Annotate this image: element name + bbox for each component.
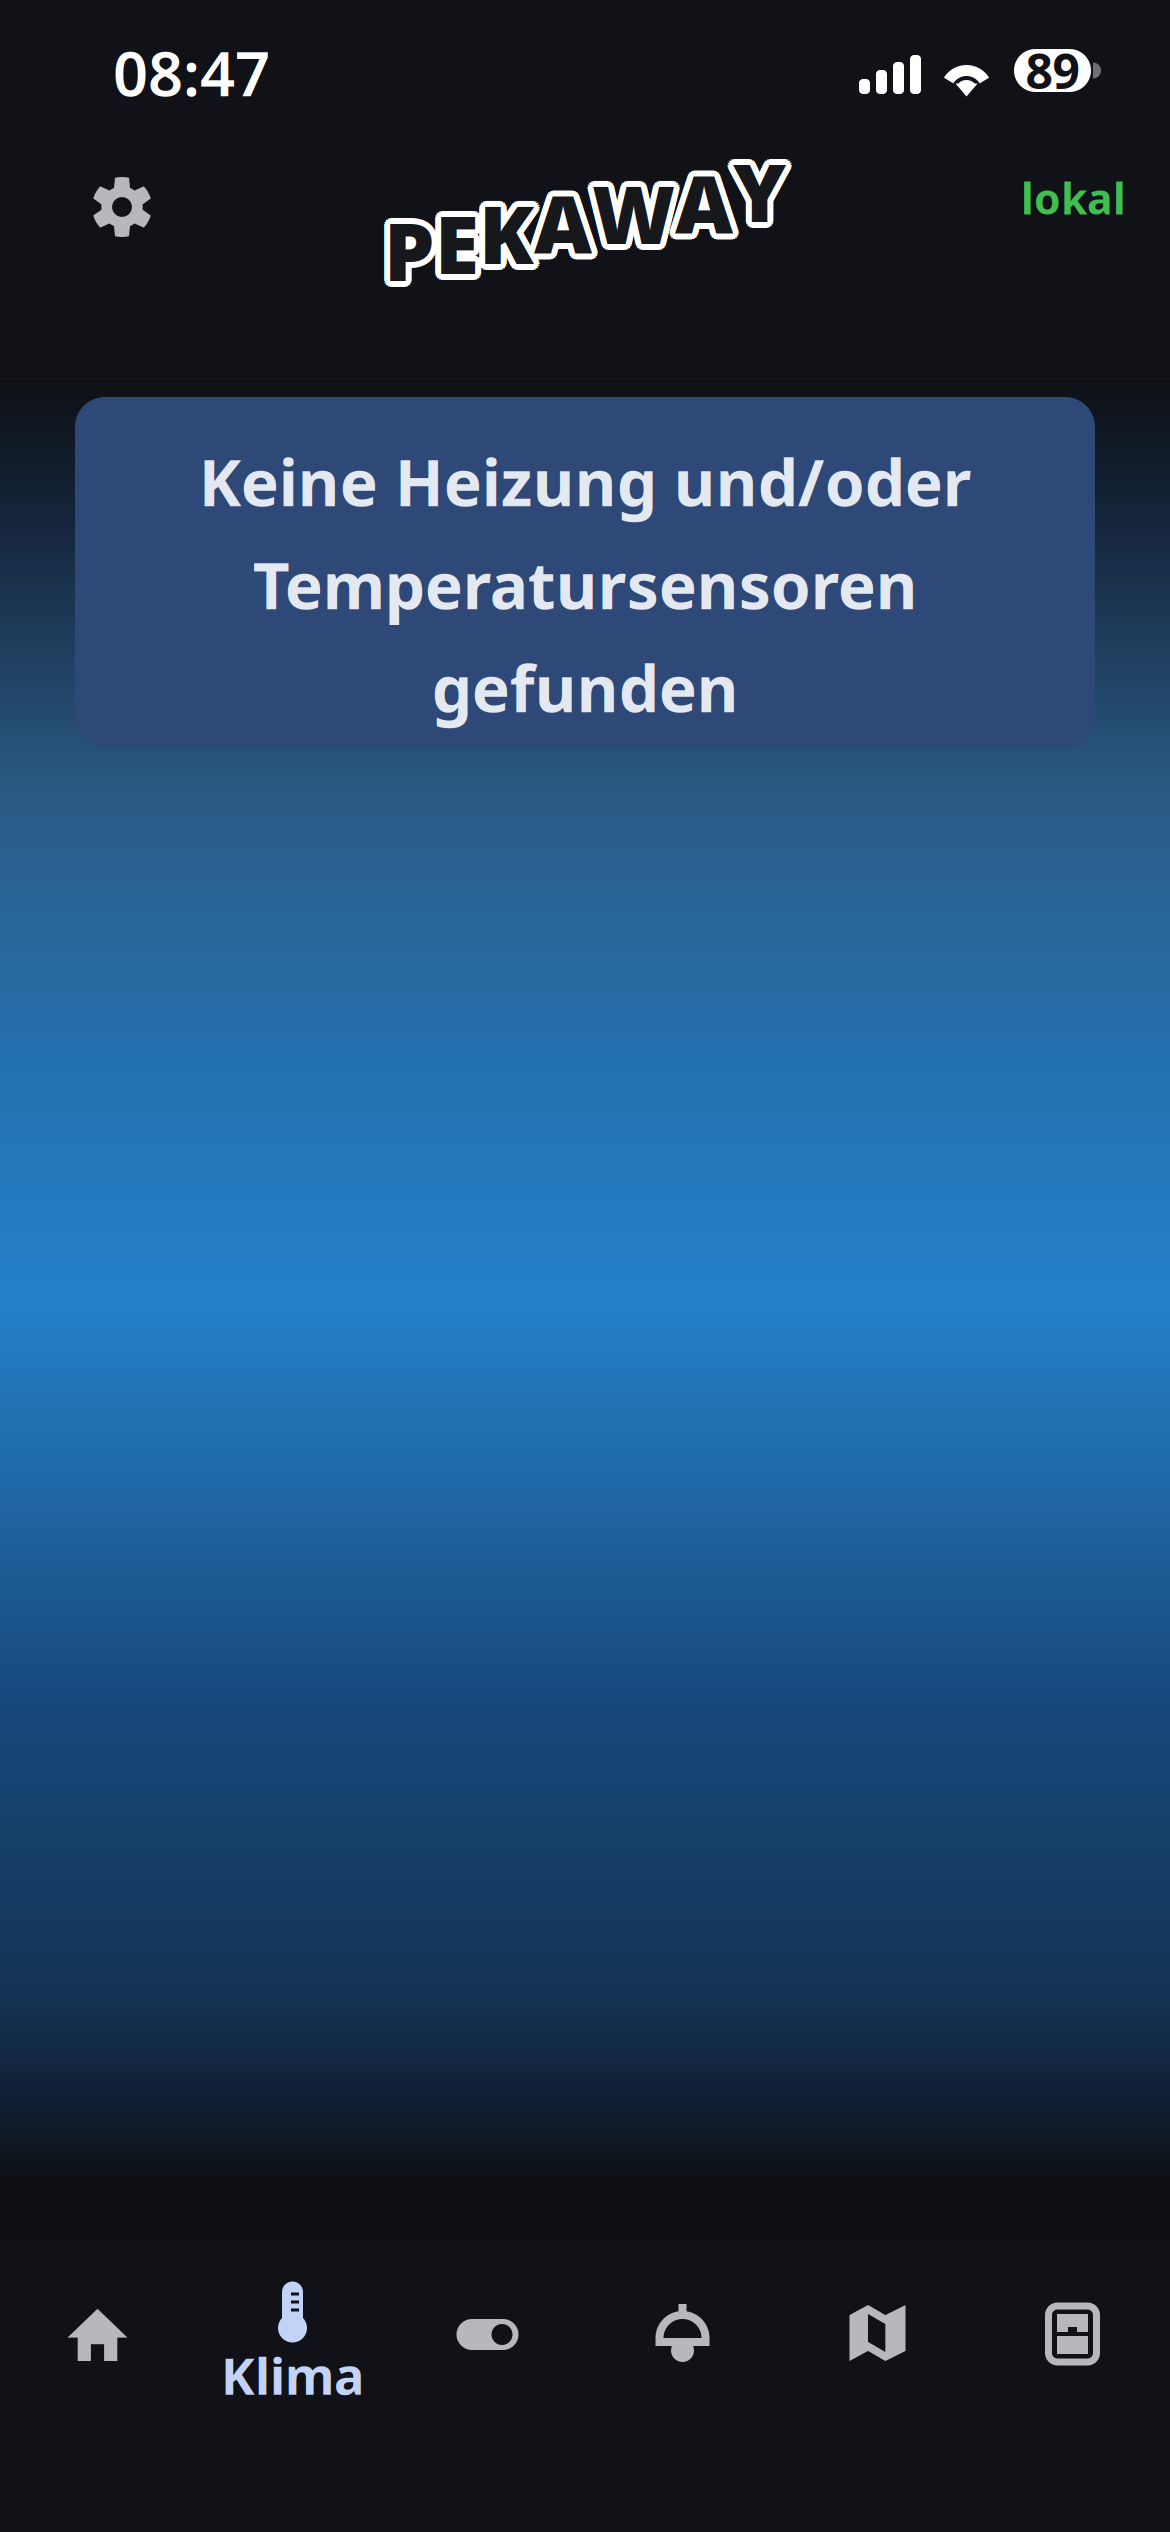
staticText: P — [382, 191, 433, 297]
staticText: P — [388, 193, 439, 299]
staticText: Y — [739, 138, 792, 244]
staticText: A — [540, 170, 598, 276]
staticText: 08:47 — [113, 32, 270, 113]
staticText: Y — [731, 143, 784, 250]
staticText: K — [473, 182, 528, 288]
staticText: W — [596, 156, 679, 262]
button[interactable]: Klima — [195, 2242, 390, 2529]
staticText: A — [669, 150, 727, 256]
staticText: Y — [729, 134, 782, 240]
button[interactable]: Karte — [780, 2242, 975, 2529]
staticText: A — [669, 152, 727, 258]
button[interactable]: Start — [0, 2242, 195, 2529]
staticText: W — [592, 160, 675, 266]
staticText: W — [594, 165, 677, 272]
staticText: P — [378, 199, 429, 305]
staticText: Y — [731, 132, 784, 238]
staticText: A — [538, 166, 596, 272]
staticText: K — [475, 184, 530, 290]
staticText: Y — [727, 138, 780, 244]
staticText: A — [528, 168, 586, 274]
staticText: W — [594, 154, 677, 260]
button[interactable]: Schalter — [390, 2242, 585, 2529]
staticText: P — [378, 195, 429, 301]
staticText: A — [680, 152, 738, 258]
staticText: Y — [735, 143, 788, 250]
staticText: 89 — [1025, 39, 1079, 102]
staticText: Y — [733, 144, 786, 250]
staticText: A — [679, 146, 737, 252]
staticText: Y — [738, 136, 791, 242]
staticText: P — [388, 201, 439, 307]
staticText: E — [435, 184, 479, 290]
staticText: Y — [738, 140, 791, 246]
staticText: E — [440, 192, 484, 298]
staticText: Keine Heizung und/oder Temperatursensore… — [198, 439, 971, 730]
staticText: A — [677, 144, 735, 250]
staticText: K — [479, 180, 534, 286]
staticText: K — [479, 186, 534, 292]
staticText: W — [592, 166, 675, 272]
button[interactable]: Einstellungen — [64, 138, 180, 258]
staticText: K — [484, 182, 539, 288]
staticText: E — [429, 190, 473, 296]
staticText: K — [483, 176, 538, 282]
staticText: Y — [735, 132, 788, 238]
staticText: P — [384, 191, 435, 297]
staticText: P — [380, 193, 431, 299]
staticText: A — [536, 164, 594, 270]
staticText: A — [675, 150, 733, 256]
staticText: K — [479, 174, 534, 280]
staticText: A — [673, 144, 731, 250]
staticText: E — [431, 194, 475, 300]
staticText: A — [536, 175, 594, 282]
staticText: P — [380, 201, 431, 307]
staticText: A — [532, 175, 590, 282]
staticText: E — [440, 188, 484, 294]
staticText: K — [473, 178, 528, 284]
staticText: W — [588, 156, 671, 262]
staticText: Y — [727, 140, 780, 246]
staticText: E — [439, 186, 483, 292]
staticText: K — [485, 180, 540, 286]
staticText: A — [528, 170, 586, 276]
staticText: E — [435, 196, 479, 302]
staticText: P — [389, 199, 440, 305]
staticText: A — [681, 150, 739, 256]
staticText: E — [429, 192, 473, 298]
staticText: W — [597, 158, 680, 264]
staticText: W — [590, 154, 673, 260]
staticText: A — [675, 144, 733, 250]
staticText: K — [483, 184, 538, 290]
staticText: A — [671, 146, 729, 252]
staticText: A — [532, 164, 590, 270]
staticText: W — [586, 160, 669, 266]
staticText: A — [534, 176, 592, 282]
staticText: P — [382, 202, 433, 309]
staticText: A — [677, 155, 735, 262]
button[interactable]: Licht — [585, 2242, 780, 2529]
staticText: A — [669, 148, 727, 254]
staticText: E — [439, 194, 483, 300]
staticText: A — [539, 168, 597, 274]
staticText: W — [598, 160, 681, 266]
staticText: K — [477, 185, 532, 292]
staticText: Y — [737, 142, 790, 248]
staticText: W — [590, 165, 673, 272]
staticText: W — [586, 158, 669, 264]
button[interactable]: Kühlschrank — [975, 2242, 1170, 2529]
staticText: A — [530, 174, 588, 280]
staticText: P — [389, 195, 440, 301]
staticText: E — [429, 188, 473, 294]
staticText: E — [441, 190, 485, 296]
staticText: K — [484, 178, 539, 284]
staticText: E — [431, 186, 475, 292]
staticText: A — [673, 155, 731, 262]
staticText: A — [538, 174, 596, 280]
staticText: K — [481, 174, 536, 280]
staticText: A — [680, 148, 738, 254]
staticText: E — [437, 184, 481, 290]
staticText: E — [437, 195, 481, 302]
button[interactable]: lokal — [976, 138, 1126, 258]
staticText: E — [433, 195, 477, 302]
